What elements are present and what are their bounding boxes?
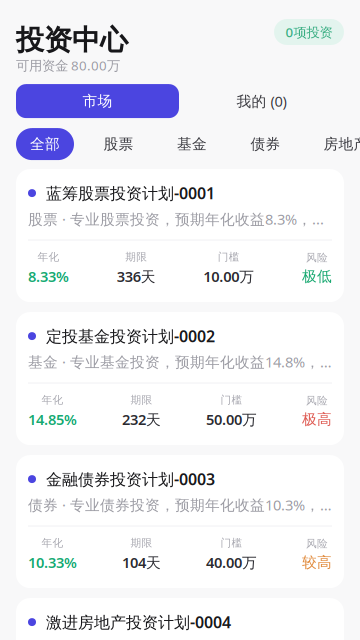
button[interactable]: 我的 (0) [179,84,344,118]
staticText: 全部 [30,135,60,153]
staticText: 8.33% [28,267,69,286]
staticText: 定投基金投资计划-0002 [46,325,215,347]
staticText: 较高 [302,553,332,571]
staticText: 激进房地产投资计划-0004 [46,611,231,633]
staticText: 期限 [130,536,152,550]
staticText: 14.85% [28,410,77,429]
staticText: 风险 [306,394,328,407]
staticText: 年化 [41,393,63,407]
staticText: 股票 · 专业股票投资，预期年化收益8.3%，风… [28,209,332,229]
staticText: 年化 [41,536,63,550]
button[interactable]: 全部 [16,128,74,160]
staticText: 年化 [37,250,59,264]
staticText: 0项投资 [285,23,332,41]
staticText: 门槛 [218,250,240,264]
staticText: 极高 [302,410,332,428]
staticText: 我的 (0) [236,91,286,111]
staticText: 期限 [125,250,147,264]
button[interactable]: 激进房地产投资计划-0004 [16,598,344,640]
staticText: 极低 [302,267,332,285]
staticText: 房地产 [323,135,360,153]
staticText: 投资中心 [16,23,128,57]
staticText: 债券 [250,135,280,153]
button[interactable]: 0项投资 [274,19,344,45]
staticText: 可用资金 80.00万 [16,56,120,74]
staticText: 10.00万 [203,267,254,286]
staticText: 债券 · 专业债券投资，预期年化收益10.3%，… [28,495,332,515]
button[interactable]: 债券 [236,128,294,160]
button[interactable]: 市场 [16,84,179,118]
staticText: 336天 [117,267,156,286]
staticText: 市场 [82,92,112,110]
staticText: 232天 [122,410,161,429]
staticText: 风险 [306,537,328,550]
button[interactable]: 基金 [163,128,221,160]
staticText: 104天 [122,553,161,572]
button[interactable]: 房地产 [310,128,360,160]
staticText: 股票 [103,135,133,153]
staticText: 期限 [130,393,152,407]
button[interactable]: 金融债券投资计划-0003 [16,455,344,588]
staticText: 蓝筹股票投资计划-0001 [46,182,215,204]
staticText: 基金 [177,135,207,153]
button[interactable]: 定投基金投资计划-0002 [16,312,344,445]
button[interactable]: 蓝筹股票投资计划-0001 [16,169,344,302]
staticText: 金融债券投资计划-0003 [46,468,215,490]
staticText: 50.00万 [206,410,257,429]
staticText: 40.00万 [206,553,257,572]
staticText: 10.33% [28,553,77,572]
staticText: 门槛 [220,393,242,407]
staticText: 风险 [306,251,328,264]
button[interactable]: 股票 [89,128,147,160]
staticText: 门槛 [220,536,242,550]
staticText: 基金 · 专业基金投资，预期年化收益14.8%，… [28,352,332,372]
